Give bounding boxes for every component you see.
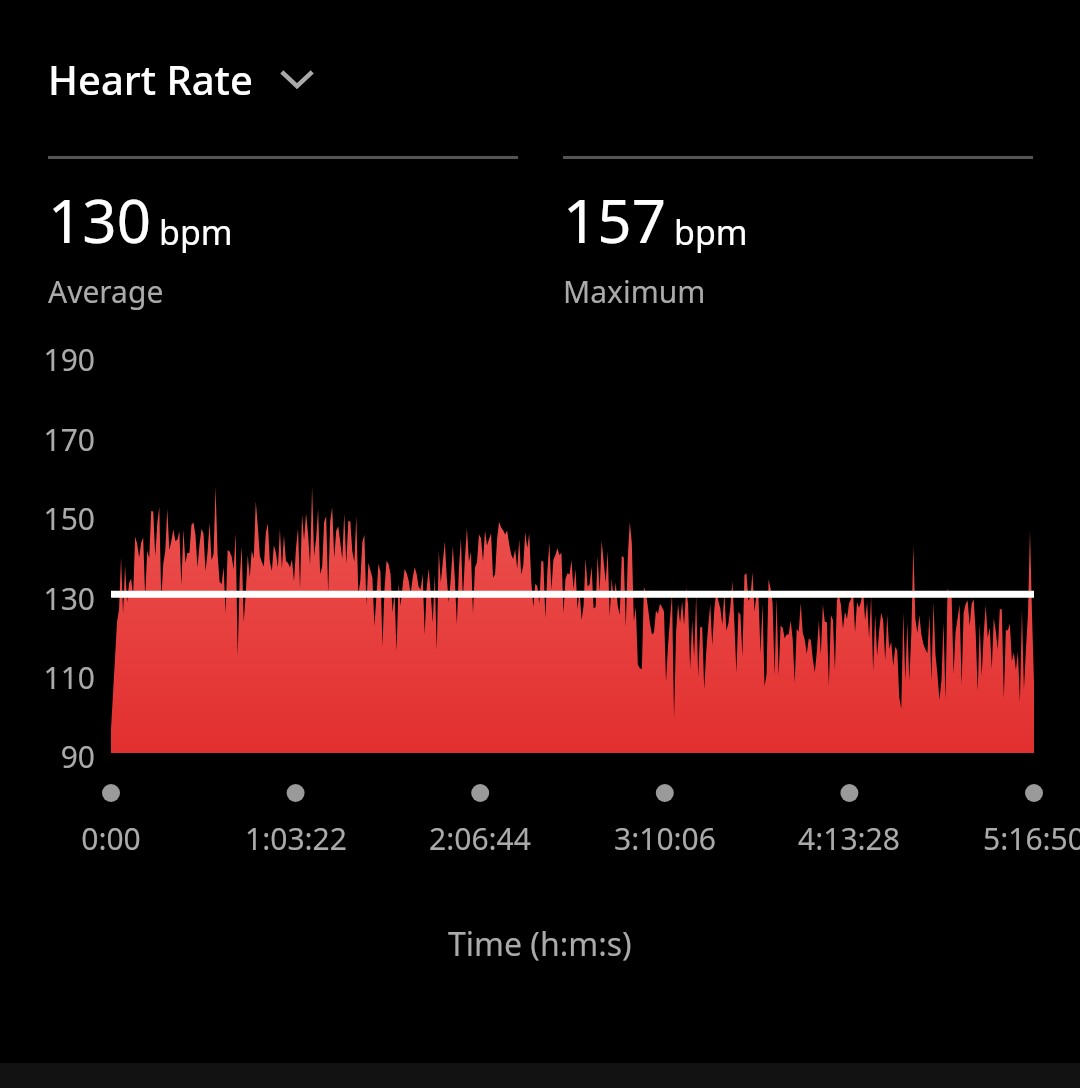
staticText: Heart Rate <box>48 52 253 106</box>
staticText: 0:00 <box>81 818 141 859</box>
staticText: Time (h:m:s) <box>448 922 632 966</box>
staticText: 170 <box>43 419 95 460</box>
staticText: Maximum <box>563 271 706 312</box>
staticText: 130 <box>48 179 151 261</box>
staticText: 110 <box>43 657 95 698</box>
staticText: 90 <box>60 736 95 777</box>
staticText: bpm <box>159 209 233 255</box>
staticText: 4:13:28 <box>798 818 900 859</box>
staticText: 150 <box>43 498 95 539</box>
staticText: 5:16:50 <box>983 818 1080 859</box>
staticText: Average <box>48 271 164 312</box>
button[interactable]: 157 <box>563 156 1033 312</box>
staticText: bpm <box>674 209 748 255</box>
staticText: 157 <box>563 179 666 261</box>
staticText: 2:06:44 <box>429 818 531 859</box>
other: Expand metric selector <box>275 57 319 101</box>
button[interactable]: Heart Rate <box>48 52 319 106</box>
staticText: 130 <box>43 578 95 619</box>
button[interactable]: 130 <box>48 156 518 312</box>
staticText: 190 <box>43 339 95 380</box>
staticText: 1:03:22 <box>245 818 347 859</box>
staticText: 3:10:06 <box>614 818 716 859</box>
